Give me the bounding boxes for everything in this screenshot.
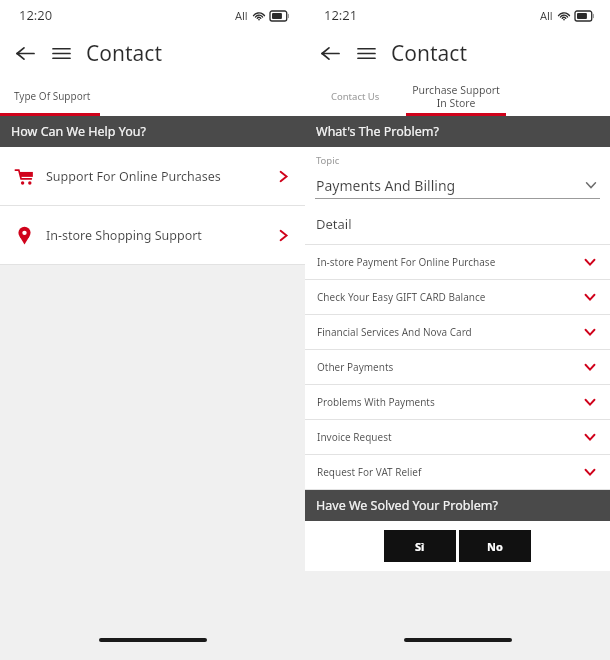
staticText: In-store Shopping Support (46, 227, 275, 244)
staticText: Problems With Payments (317, 395, 582, 409)
staticText: What's The Problem? (316, 123, 439, 140)
button[interactable]: Menu (44, 36, 78, 70)
staticText: Check Your Easy GIFT CARD Balance (317, 290, 582, 304)
staticText: Other Payments (317, 360, 582, 374)
staticText: Invoice Request (317, 430, 582, 444)
button[interactable]: In-store Payment For Online Purchase (305, 245, 610, 279)
button[interactable]: In-store Shopping Support (0, 206, 305, 264)
button[interactable]: Sì (384, 530, 456, 562)
staticText: Purchase Support In Store (412, 83, 500, 110)
staticText: Sì (415, 539, 425, 554)
staticText: Type Of Support (14, 89, 91, 103)
button[interactable]: Back (8, 36, 42, 70)
button[interactable]: Problems With Payments (305, 385, 610, 419)
staticText: Contact (391, 39, 467, 68)
button[interactable]: Back (313, 36, 347, 70)
button[interactable]: No (459, 530, 531, 562)
button[interactable]: Request For VAT Relief (305, 455, 610, 489)
staticText: 12:20 (19, 6, 53, 24)
staticText: No (487, 539, 503, 554)
button[interactable]: Financial Services And Nova Card (305, 315, 610, 349)
staticText: Payments And Billing (316, 176, 583, 195)
staticText: 12:21 (324, 6, 358, 24)
staticText: Detail (316, 215, 352, 233)
staticText: Contact (86, 39, 162, 68)
button[interactable]: Purchase Support In Store (406, 76, 506, 116)
staticText: Contact Us (331, 90, 380, 103)
button[interactable]: Payments And Billing (305, 172, 610, 198)
staticText: All (235, 8, 248, 23)
staticText: Financial Services And Nova Card (317, 325, 582, 339)
button[interactable]: Contact Us (305, 76, 406, 116)
staticText: Request For VAT Relief (317, 465, 582, 479)
button[interactable]: Other Payments (305, 350, 610, 384)
staticText: Have We Solved Your Problem? (316, 497, 498, 514)
staticText: In-store Payment For Online Purchase (317, 255, 582, 269)
staticText: How Can We Help You? (11, 123, 146, 140)
button[interactable]: Menu (349, 36, 383, 70)
button[interactable]: Invoice Request (305, 420, 610, 454)
button[interactable]: Check Your Easy GIFT CARD Balance (305, 280, 610, 314)
staticText: Support For Online Purchases (46, 168, 275, 185)
staticText: Topic (316, 154, 340, 167)
staticText: All (540, 8, 553, 23)
button[interactable]: Support For Online Purchases (0, 147, 305, 205)
